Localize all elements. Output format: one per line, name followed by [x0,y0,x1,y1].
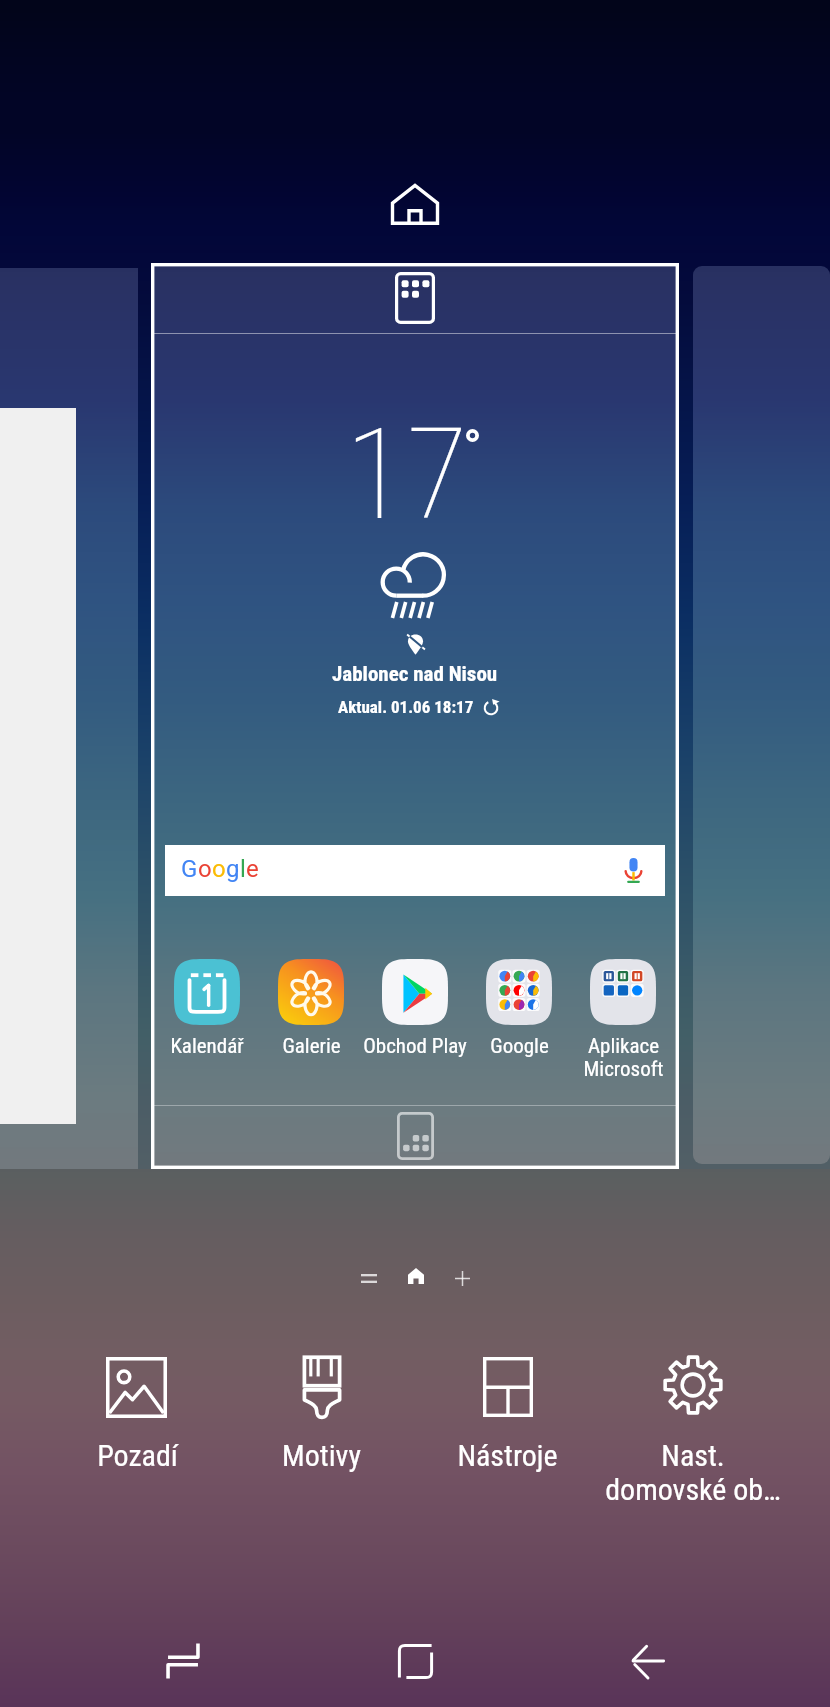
button[interactable] [486,959,552,1025]
staticText: e [246,855,259,883]
button[interactable] [0,268,138,1169]
button[interactable] [382,959,448,1025]
button[interactable]: 17 [151,400,679,530]
button[interactable] [174,959,240,1025]
button[interactable]: Home [382,1628,448,1694]
button[interactable]: Recent apps [150,1628,216,1694]
staticText: Obchod Play [363,1034,467,1059]
button[interactable]: Home page [392,1252,439,1299]
staticText: Kalendář [170,1034,244,1059]
button[interactable] [590,959,656,1025]
button[interactable] [278,959,344,1025]
button[interactable]: Add page [439,1255,486,1302]
other: Voice search [620,857,647,884]
button[interactable]: Nástroje [414,1354,600,1514]
button[interactable]: Pozadí [44,1354,230,1514]
staticText: Jablonec nad Nisou [332,662,498,687]
button[interactable]: Add widget [151,263,679,333]
button[interactable]: Back [615,1628,681,1694]
button[interactable] [693,266,830,1164]
staticText: Motivy [282,1438,361,1473]
staticText: Pozadí [97,1438,178,1473]
staticText: Google [490,1034,549,1059]
staticText: Galerie [282,1034,341,1059]
button[interactable]: Nast. domovské ob… [600,1354,786,1514]
button[interactable]: Apps [397,1112,434,1160]
button[interactable]: G [165,845,665,896]
staticText: 17 [345,400,468,530]
button[interactable]: Motivy [228,1354,414,1514]
staticText: G [181,855,198,883]
staticText: l [240,855,246,883]
staticText: Aktual. 01.06 18:17 [338,697,474,717]
staticText: Nast. domovské ob… [605,1438,781,1507]
staticText: o [198,855,212,883]
staticText: g [226,855,240,883]
staticText: o [212,855,226,883]
button[interactable]: Home screen [390,181,440,229]
staticText: Nástroje [457,1438,558,1473]
staticText: Aplikace Microsoft [583,1034,664,1081]
button[interactable]: All pages [345,1255,392,1302]
